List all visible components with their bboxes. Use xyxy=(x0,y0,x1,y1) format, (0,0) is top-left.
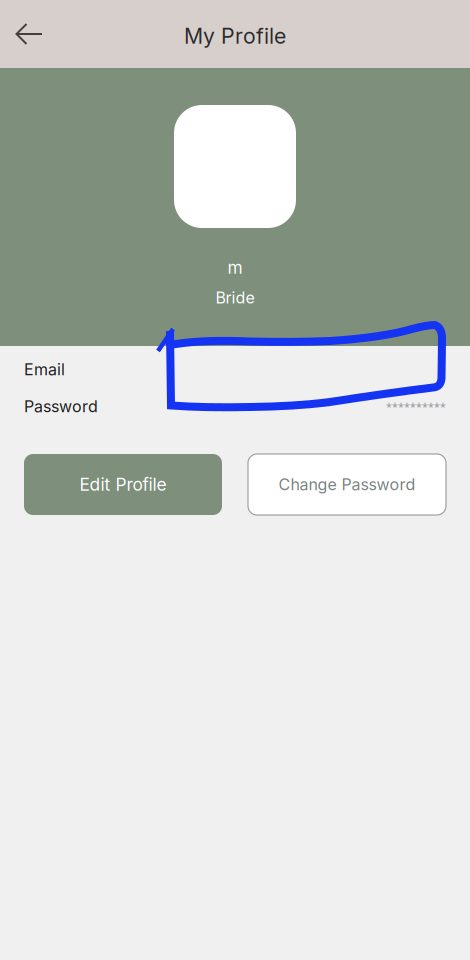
staticText: ********** xyxy=(386,399,446,414)
staticText: Edit Profile xyxy=(79,474,166,495)
staticText: Bride xyxy=(215,288,254,307)
staticText: Email xyxy=(24,360,65,379)
button[interactable]: Edit Profile xyxy=(24,454,222,515)
staticText: Change Password xyxy=(278,475,415,494)
staticText: Password xyxy=(24,397,98,416)
staticText: m xyxy=(227,257,242,278)
staticText: My Profile xyxy=(184,23,286,49)
button[interactable]: Change Password xyxy=(248,454,446,515)
button[interactable]: Back xyxy=(0,11,57,57)
